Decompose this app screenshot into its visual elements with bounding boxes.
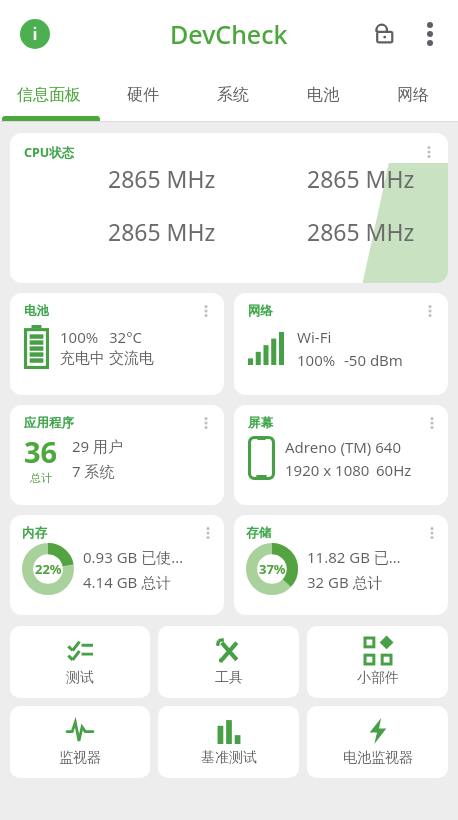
button[interactable]: App info bbox=[13, 12, 57, 56]
button[interactable]: 内存 bbox=[10, 515, 224, 615]
staticText: 7 系统 bbox=[72, 461, 115, 481]
staticText: 4.14 GB 总计 bbox=[83, 572, 172, 592]
button[interactable]: Unlocked bbox=[362, 11, 408, 57]
button[interactable]: Card menu bbox=[198, 303, 214, 319]
button[interactable]: Card menu bbox=[198, 415, 214, 431]
staticText: 29 用户 bbox=[72, 436, 124, 456]
button[interactable]: 基准测试 bbox=[158, 706, 299, 778]
button[interactable]: 小部件 bbox=[307, 626, 448, 698]
staticText: 2865 MHz bbox=[307, 163, 415, 194]
staticText: 充电中 bbox=[60, 349, 105, 368]
staticText: Wi-Fi bbox=[297, 327, 332, 347]
button[interactable]: Card menu bbox=[421, 144, 437, 160]
staticText: 应用程序 bbox=[24, 415, 74, 431]
staticText: 系统 bbox=[217, 85, 249, 105]
staticText: 信息面板 bbox=[17, 85, 81, 105]
button[interactable]: More options bbox=[408, 12, 452, 56]
staticText: DevCheck bbox=[170, 17, 288, 51]
staticText: 基准测试 bbox=[201, 749, 257, 767]
staticText: 存储 bbox=[246, 525, 271, 541]
staticText: 100% bbox=[297, 350, 336, 370]
staticText: 60Hz bbox=[376, 460, 412, 480]
staticText: 37% bbox=[259, 560, 286, 578]
button[interactable]: 硬件 bbox=[98, 68, 188, 121]
staticText: Adreno (TM) 640 bbox=[285, 437, 401, 457]
button[interactable]: Card menu bbox=[424, 415, 440, 431]
staticText: 电池 bbox=[24, 303, 49, 319]
staticText: 工具 bbox=[215, 669, 243, 687]
staticText: 32°C bbox=[109, 327, 143, 347]
staticText: 监视器 bbox=[59, 749, 101, 767]
button[interactable]: CPU状态 bbox=[10, 133, 448, 283]
button[interactable]: 电池 bbox=[278, 68, 368, 121]
button[interactable]: 信息面板 bbox=[0, 68, 98, 121]
staticText: 电池监视器 bbox=[343, 749, 413, 767]
staticText: 测试 bbox=[66, 669, 94, 687]
button[interactable]: Card menu bbox=[422, 303, 438, 319]
button[interactable]: 电池 bbox=[10, 293, 224, 395]
button[interactable]: 网络 bbox=[368, 68, 458, 121]
staticText: 网络 bbox=[248, 303, 273, 319]
staticText: 100% bbox=[60, 327, 99, 347]
button[interactable]: 测试 bbox=[10, 626, 150, 698]
staticText: 硬件 bbox=[127, 85, 159, 105]
button[interactable]: 工具 bbox=[158, 626, 299, 698]
staticText: 电池 bbox=[307, 85, 339, 105]
staticText: 36 bbox=[24, 432, 58, 471]
staticText: 交流电 bbox=[109, 349, 154, 368]
staticText: 11.82 GB 已… bbox=[307, 547, 401, 567]
staticText: 1920 x 1080 bbox=[285, 460, 370, 480]
staticText: 2865 MHz bbox=[108, 216, 216, 247]
staticText: -50 dBm bbox=[344, 350, 403, 370]
staticText: 0.93 GB 已使… bbox=[83, 547, 184, 567]
button[interactable]: 网络 bbox=[234, 293, 448, 395]
staticText: 总计 bbox=[30, 471, 52, 485]
button[interactable]: 存储 bbox=[234, 515, 448, 615]
button[interactable]: 电池监视器 bbox=[307, 706, 448, 778]
staticText: 2865 MHz bbox=[108, 163, 216, 194]
staticText: 32 GB 总计 bbox=[307, 572, 383, 592]
staticText: 内存 bbox=[22, 525, 47, 541]
staticText: 网络 bbox=[397, 85, 429, 105]
staticText: 22% bbox=[35, 560, 62, 578]
button[interactable]: 屏幕 bbox=[234, 405, 448, 505]
button[interactable]: 应用程序 bbox=[10, 405, 224, 505]
staticText: CPU状态 bbox=[24, 144, 75, 161]
staticText: 小部件 bbox=[357, 669, 399, 687]
button[interactable]: 系统 bbox=[188, 68, 278, 121]
button[interactable]: 监视器 bbox=[10, 706, 150, 778]
staticText: 2865 MHz bbox=[307, 216, 415, 247]
button[interactable]: Card menu bbox=[424, 525, 440, 541]
button[interactable]: Card menu bbox=[200, 525, 216, 541]
staticText: 屏幕 bbox=[248, 415, 273, 431]
